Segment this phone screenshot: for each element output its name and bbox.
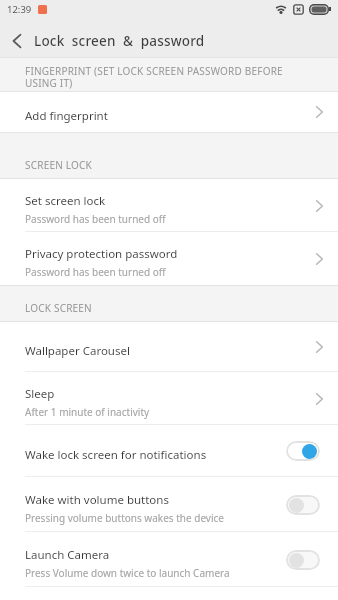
staticText: Pressing volume buttons wakes the device <box>25 511 224 525</box>
button[interactable]: Wallpaper Carousel <box>0 322 338 372</box>
staticText: Press Volume down twice to launch Camera <box>25 566 230 580</box>
staticText: Password has been turned off <box>25 265 166 279</box>
staticText: Sleep <box>25 386 55 402</box>
staticText: Privacy protection password <box>25 246 178 262</box>
button[interactable] <box>286 495 320 515</box>
staticText: Lock screen & password <box>34 32 205 50</box>
staticText: After 1 minute of inactivity <box>25 405 150 419</box>
staticText: 12:39 <box>7 3 32 16</box>
button[interactable]: Set screen lock <box>0 179 338 232</box>
staticText: Add fingerprint <box>25 108 108 124</box>
button[interactable]: Launch Camera <box>0 532 338 587</box>
staticText: Password has been turned off <box>25 212 166 226</box>
staticText: Wake lock screen for notifications <box>25 447 207 463</box>
button[interactable]: Sleep <box>0 372 338 425</box>
staticText: Wake with volume buttons <box>25 492 169 508</box>
staticText: Launch Camera <box>25 547 110 563</box>
button[interactable] <box>0 25 34 57</box>
button[interactable]: Wake with volume buttons <box>0 477 338 532</box>
button[interactable]: Privacy protection password <box>0 232 338 285</box>
staticText: LOCK SCREEN <box>25 301 92 315</box>
button[interactable] <box>286 441 320 461</box>
staticText: Wallpaper Carousel <box>25 343 130 359</box>
button[interactable] <box>286 550 320 570</box>
staticText: SCREEN LOCK <box>25 158 92 172</box>
button[interactable]: Add fingerprint <box>0 92 338 132</box>
staticText: FINGERPRINT (SET LOCK SCREEN PASSWORD BE… <box>25 64 283 90</box>
button[interactable]: Wake lock screen for notifications <box>0 425 338 477</box>
staticText: Set screen lock <box>25 193 106 209</box>
